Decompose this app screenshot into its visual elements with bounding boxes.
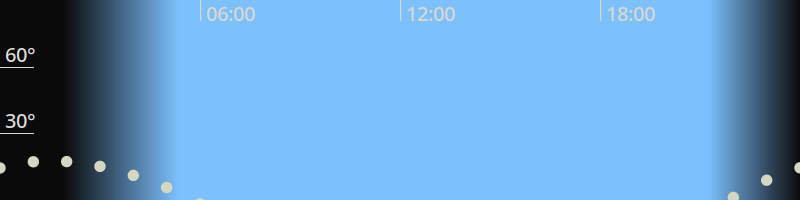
staticText: 30° [5, 107, 36, 134]
staticText: 06:00 [206, 0, 255, 27]
staticText: 60° [5, 41, 36, 68]
staticText: 18:00 [606, 0, 655, 27]
staticText: 12:00 [406, 0, 455, 27]
